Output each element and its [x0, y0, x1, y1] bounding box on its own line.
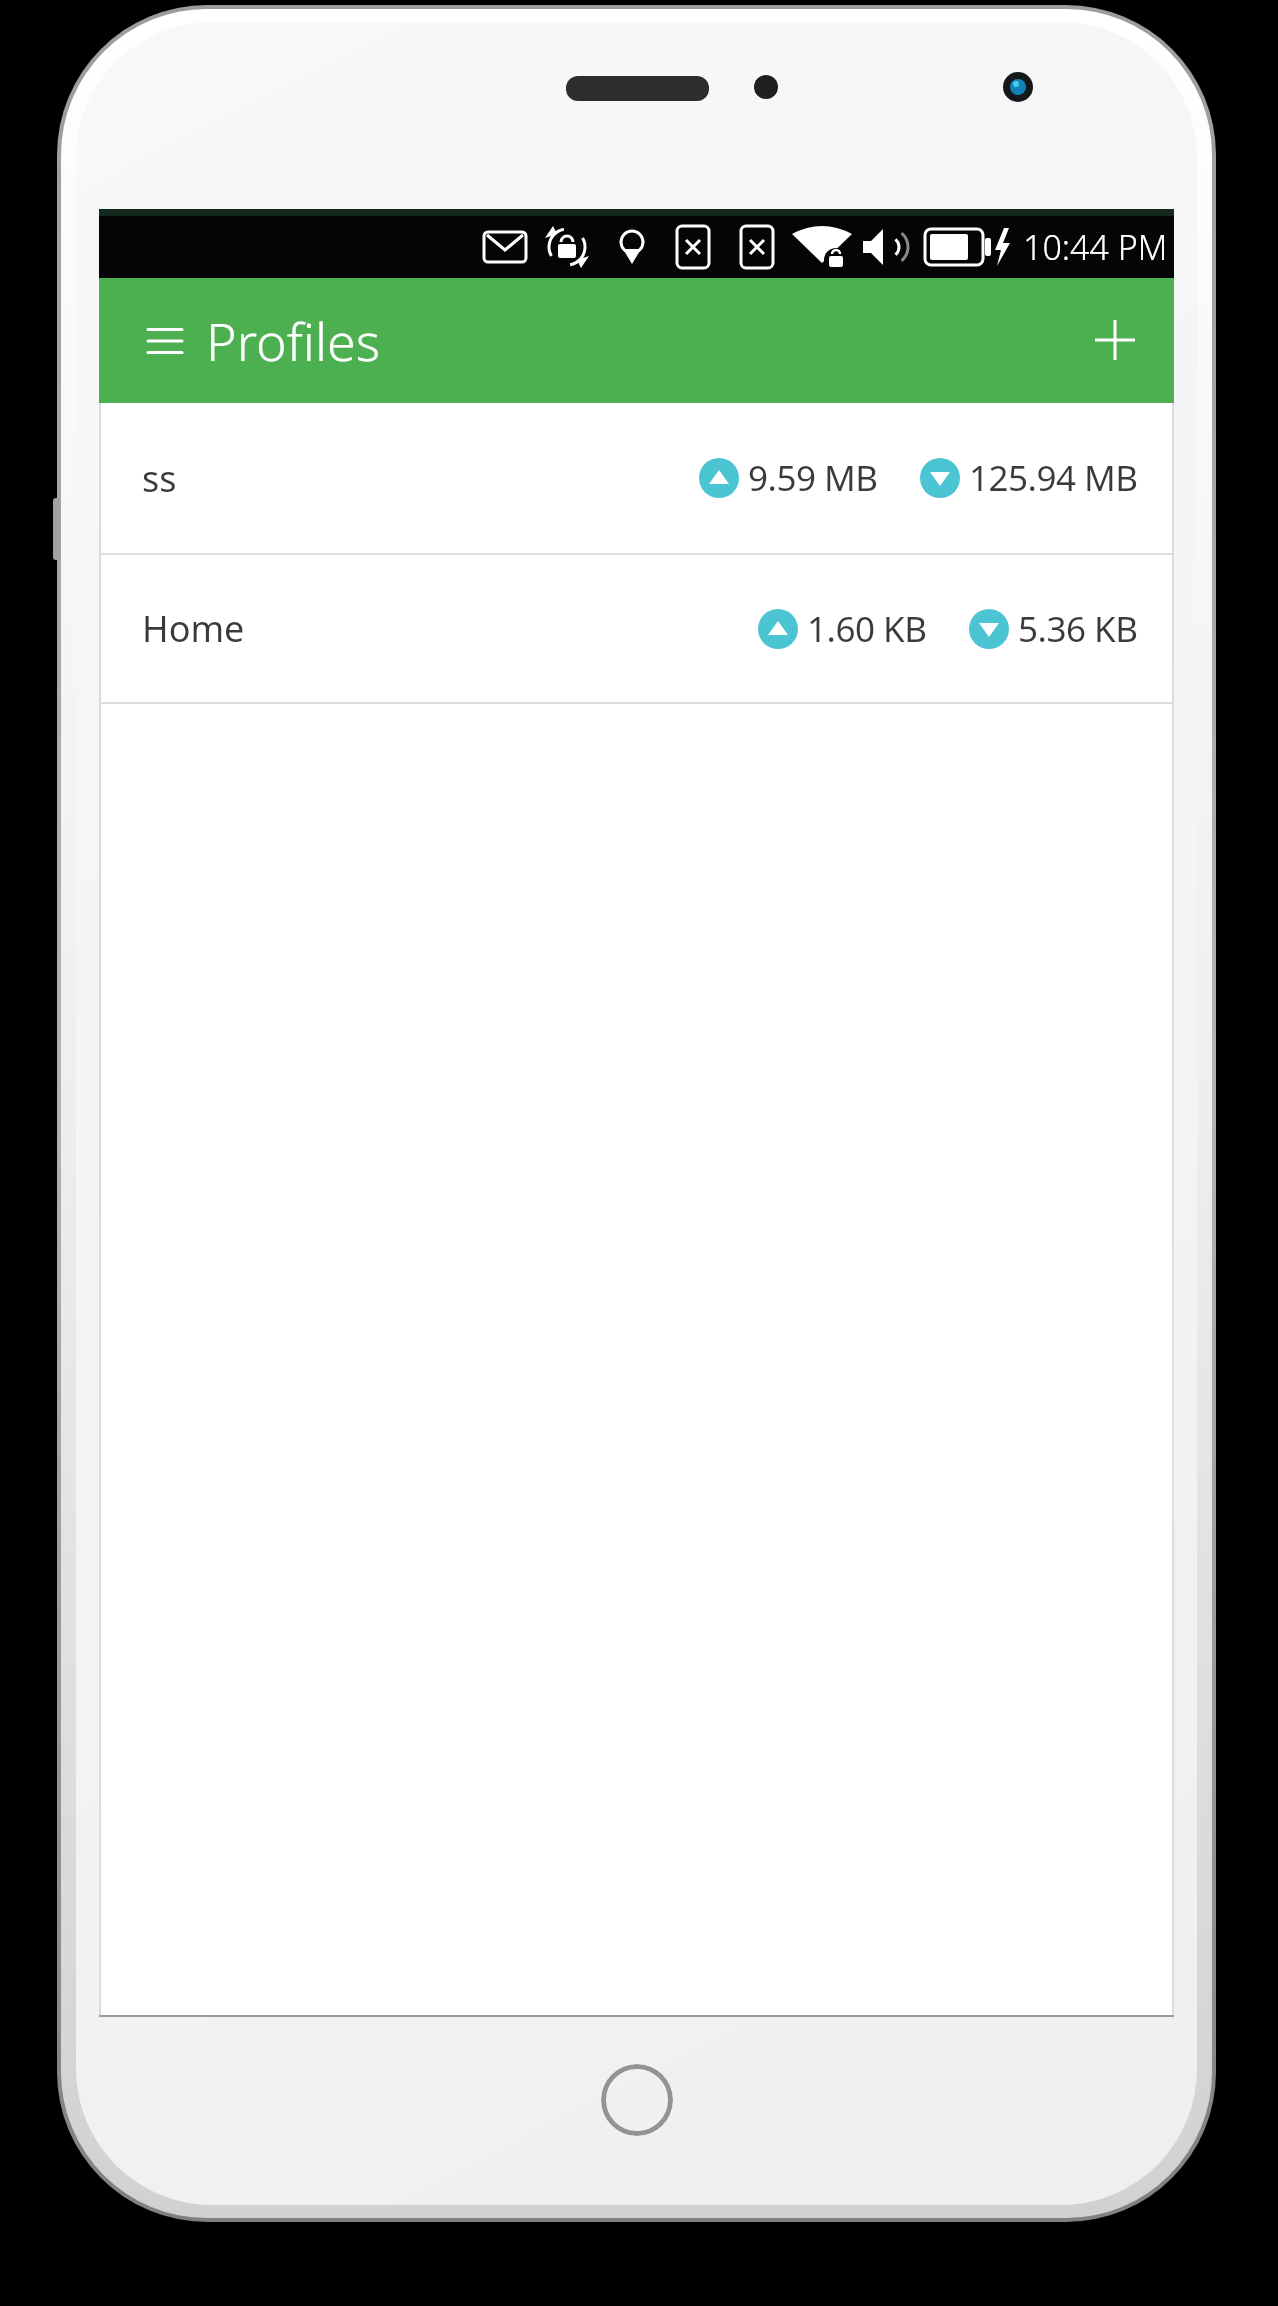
staticText: 10:44 PM — [1023, 224, 1168, 270]
staticText: ss — [142, 454, 177, 503]
button[interactable] — [1075, 300, 1155, 380]
staticText: 9.59 MB — [748, 454, 878, 502]
button[interactable] — [137, 325, 193, 357]
staticText: 1.60 KB — [807, 605, 927, 653]
button[interactable] — [601, 2064, 673, 2136]
staticText: 125.94 MB — [969, 454, 1138, 502]
staticText: 5.36 KB — [1018, 605, 1138, 653]
staticText: Profiles — [206, 305, 380, 376]
button[interactable]: Home — [99, 555, 1174, 702]
button[interactable]: ss — [99, 403, 1174, 553]
staticText: Home — [142, 604, 245, 653]
